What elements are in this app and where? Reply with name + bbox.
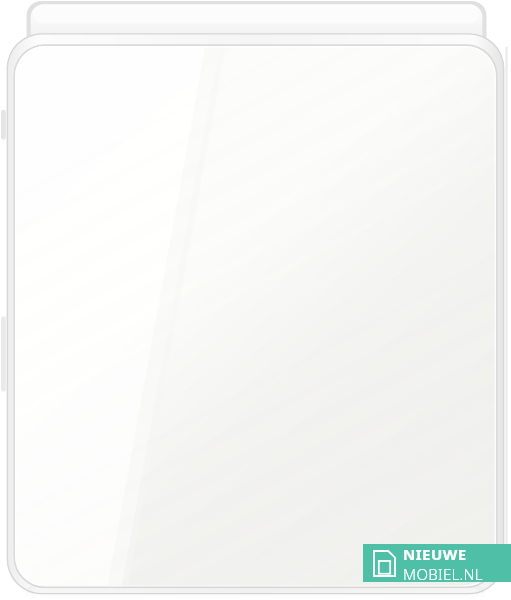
other: NieuweMobiel.NL logo [374, 551, 395, 576]
button[interactable]: NieuweMobiel.NL logo [363, 544, 511, 582]
staticText: MOBIEL.NL [403, 564, 483, 582]
staticText: NIEUWE [403, 544, 467, 564]
